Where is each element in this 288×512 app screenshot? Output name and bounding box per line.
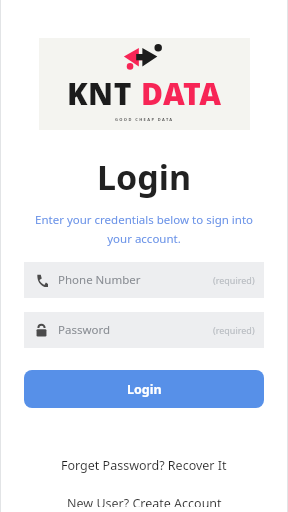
staticText: Phone Number bbox=[58, 272, 141, 288]
button[interactable]: New User? Create Account bbox=[0, 490, 288, 512]
staticText: DATA bbox=[141, 73, 222, 114]
staticText: Forget Password? Recover It bbox=[61, 457, 227, 474]
staticText: Password bbox=[58, 322, 111, 338]
staticText: Login bbox=[97, 154, 192, 200]
staticText: (required) bbox=[213, 274, 255, 286]
staticText: Login bbox=[127, 381, 162, 398]
staticText: (required) bbox=[213, 324, 255, 336]
button[interactable]: Phone Number bbox=[24, 262, 264, 298]
button[interactable]: Login bbox=[24, 370, 264, 408]
button[interactable]: Forget Password? Recover It bbox=[0, 452, 288, 479]
staticText: New User? Create Account bbox=[67, 495, 222, 507]
button[interactable]: Password bbox=[24, 312, 264, 348]
staticText: Enter your credentials below to sign int… bbox=[24, 212, 264, 246]
staticText: GOOD CHEAP DATA bbox=[115, 117, 174, 122]
staticText: KNT bbox=[67, 73, 132, 114]
